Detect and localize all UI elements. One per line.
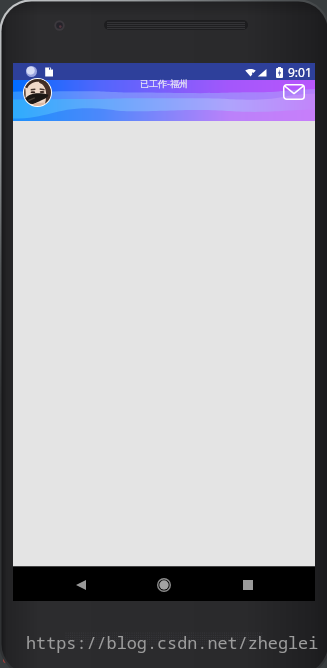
staticText: https://blog.csdn.net/zheglei: [26, 631, 319, 654]
button[interactable]: Messages: [278, 79, 309, 104]
button[interactable]: 已工作-福州: [13, 77, 315, 89]
staticText: 9:01: [288, 64, 312, 80]
button[interactable]: Back: [64, 568, 98, 602]
button[interactable]: Recents: [231, 568, 265, 602]
button[interactable]: Profile: [23, 78, 52, 107]
button[interactable]: Home: [147, 568, 181, 602]
